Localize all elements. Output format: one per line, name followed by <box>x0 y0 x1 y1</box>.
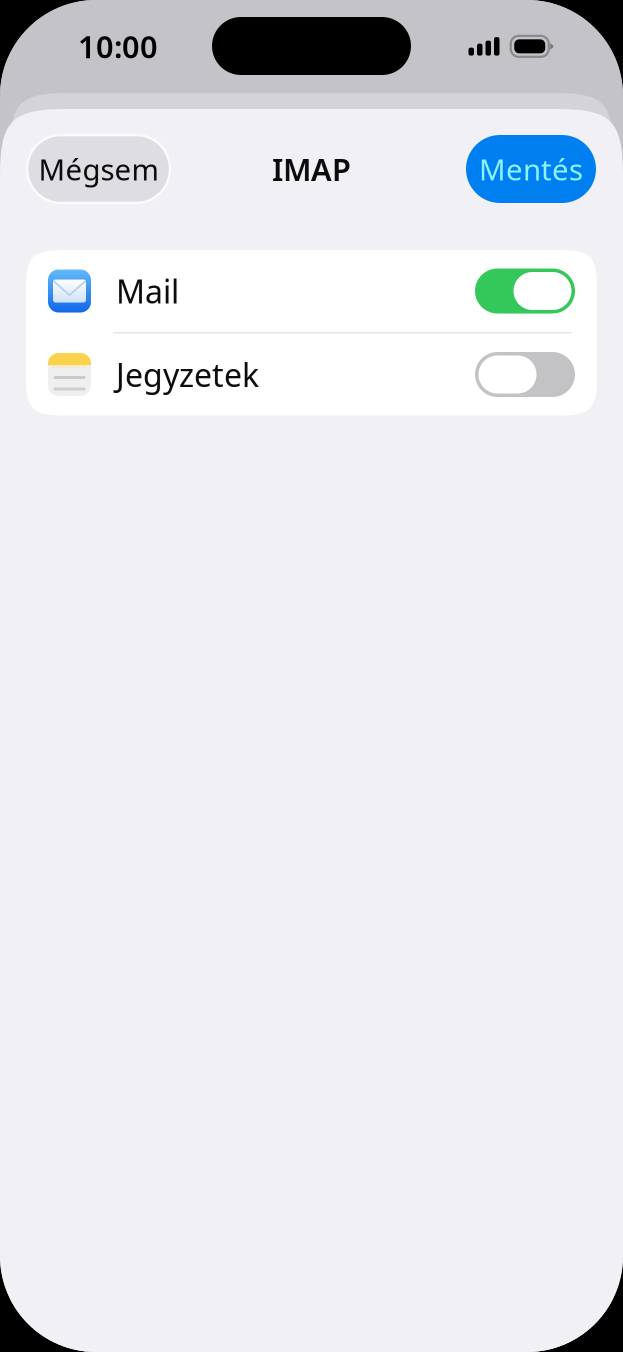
button[interactable]: Mentés <box>466 135 596 203</box>
staticText: IMAP <box>272 149 351 189</box>
staticText: Mentés <box>479 149 583 188</box>
staticText: Mail <box>116 270 179 312</box>
staticText: 10:00 <box>78 26 158 67</box>
button[interactable]: Mégsem <box>27 135 170 203</box>
button[interactable]: Mail <box>26 250 597 332</box>
staticText: Jegyzetek <box>116 353 259 396</box>
staticText: Mégsem <box>38 149 158 188</box>
button[interactable]: Jegyzetek <box>26 333 597 415</box>
